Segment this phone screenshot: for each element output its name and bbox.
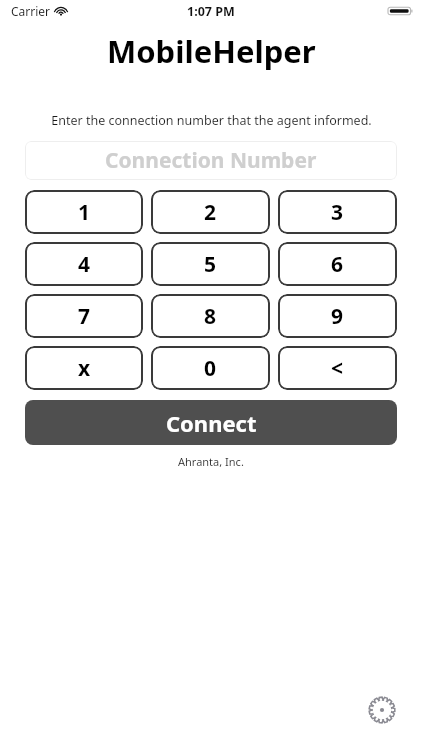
button[interactable]: 9 xyxy=(278,294,397,338)
staticText: 1:07 PM xyxy=(187,3,235,20)
button[interactable]: 6 xyxy=(278,242,397,286)
staticText: MobileHelper xyxy=(107,30,316,72)
button[interactable]: 5 xyxy=(151,242,270,286)
button[interactable]: 4 xyxy=(25,242,143,286)
button[interactable]: 7 xyxy=(25,294,143,338)
staticText: 4 xyxy=(78,250,91,279)
button[interactable]: x xyxy=(25,346,143,390)
staticText: 7 xyxy=(78,302,91,331)
button[interactable]: 2 xyxy=(151,190,270,234)
staticText: Enter the connection number that the age… xyxy=(51,112,372,129)
staticText: Connect xyxy=(166,408,257,438)
staticText: Connection Number xyxy=(105,146,317,175)
staticText: 6 xyxy=(331,250,344,279)
button[interactable]: 3 xyxy=(278,190,397,234)
staticText: 2 xyxy=(204,198,217,227)
button[interactable]: 1 xyxy=(25,190,143,234)
button[interactable]: 0 xyxy=(151,346,270,390)
button[interactable]: 8 xyxy=(151,294,270,338)
staticText: Carrier xyxy=(11,3,51,19)
button[interactable]: Connection Number xyxy=(25,141,397,180)
staticText: x xyxy=(78,354,91,383)
staticText: 1 xyxy=(78,198,91,227)
staticText: 3 xyxy=(331,198,344,227)
button[interactable]: < xyxy=(278,346,397,390)
staticText: 5 xyxy=(204,250,217,279)
staticText: 8 xyxy=(204,302,217,331)
staticText: 0 xyxy=(204,354,217,383)
button[interactable]: Settings xyxy=(365,693,399,727)
staticText: Ahranta, Inc. xyxy=(178,454,244,469)
staticText: 9 xyxy=(331,302,344,331)
staticText: < xyxy=(331,354,344,383)
button[interactable]: Connect xyxy=(25,400,397,445)
